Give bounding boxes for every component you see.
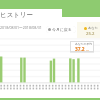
staticText: 2018/08/01〜2018/08/31 bbox=[0, 25, 42, 30]
staticText: 日 bbox=[86, 49, 89, 53]
staticText: あなた bbox=[88, 26, 98, 30]
staticText: 今月に戻る bbox=[52, 27, 72, 32]
staticText: あなたの平均 bbox=[75, 42, 93, 46]
button[interactable]: 今月に戻る bbox=[46, 26, 76, 33]
staticText: 25.2 bbox=[86, 31, 95, 37]
staticText: ヒストリー bbox=[0, 11, 34, 19]
staticText: 37.2 bbox=[75, 46, 85, 53]
